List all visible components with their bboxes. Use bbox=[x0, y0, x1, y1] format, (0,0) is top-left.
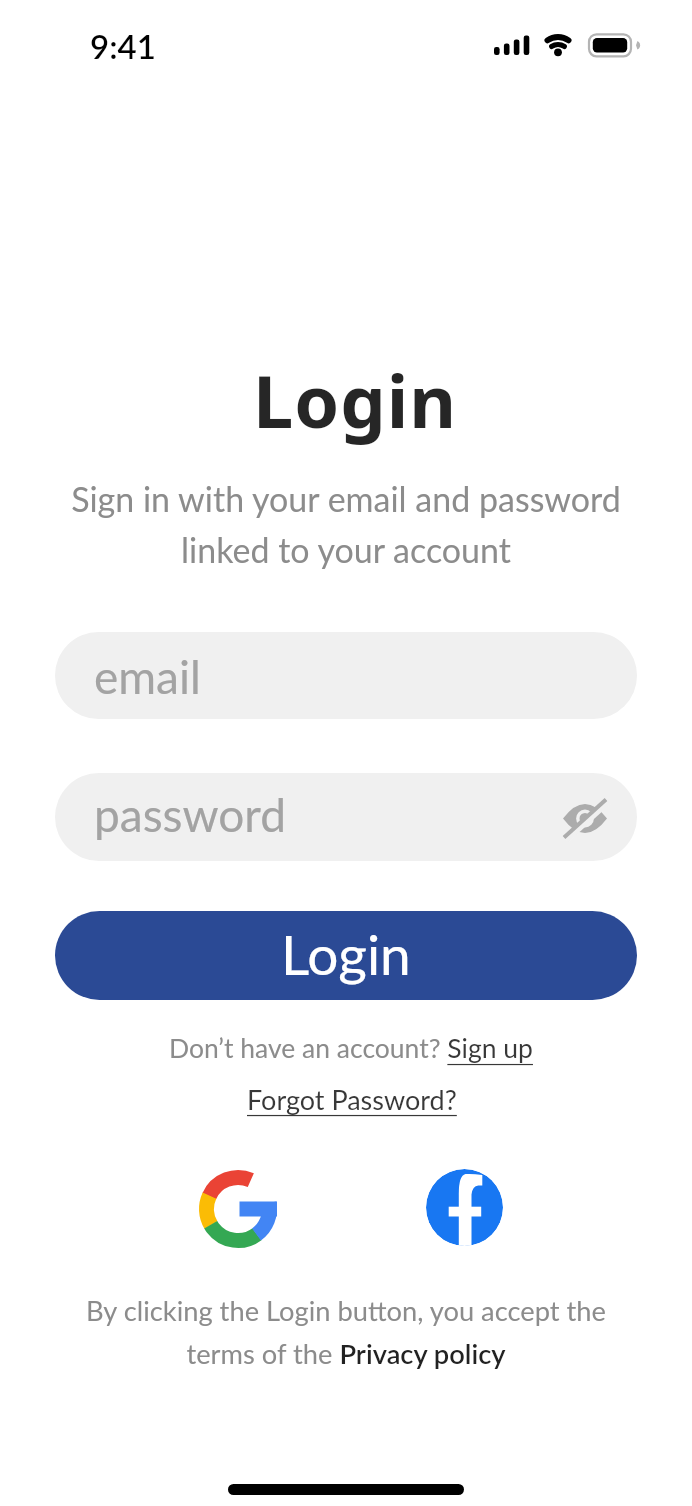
staticText: Login bbox=[281, 921, 411, 987]
button[interactable]: email bbox=[55, 632, 637, 719]
staticText: email bbox=[94, 649, 201, 704]
staticText: password bbox=[94, 787, 286, 842]
button[interactable] bbox=[199, 1170, 277, 1248]
staticText: Don’t have an account? Sign up bbox=[169, 1032, 533, 1064]
button[interactable]: password bbox=[55, 773, 637, 861]
staticText: 9:41 bbox=[90, 26, 156, 66]
button[interactable] bbox=[426, 1169, 503, 1246]
button[interactable]: Forgot Password? bbox=[6, 1077, 692, 1121]
button[interactable]: Login bbox=[55, 911, 637, 1000]
staticText: Sign in with your email and password lin… bbox=[71, 478, 621, 570]
staticText: Forgot Password? bbox=[247, 1083, 457, 1115]
button[interactable]: By clicking the Login button, you accept… bbox=[0, 1288, 692, 1376]
staticText: Login bbox=[253, 351, 458, 449]
button[interactable]: Don’t have an account? Sign up bbox=[5, 1026, 692, 1070]
staticText: By clicking the Login button, you accept… bbox=[86, 1294, 606, 1370]
